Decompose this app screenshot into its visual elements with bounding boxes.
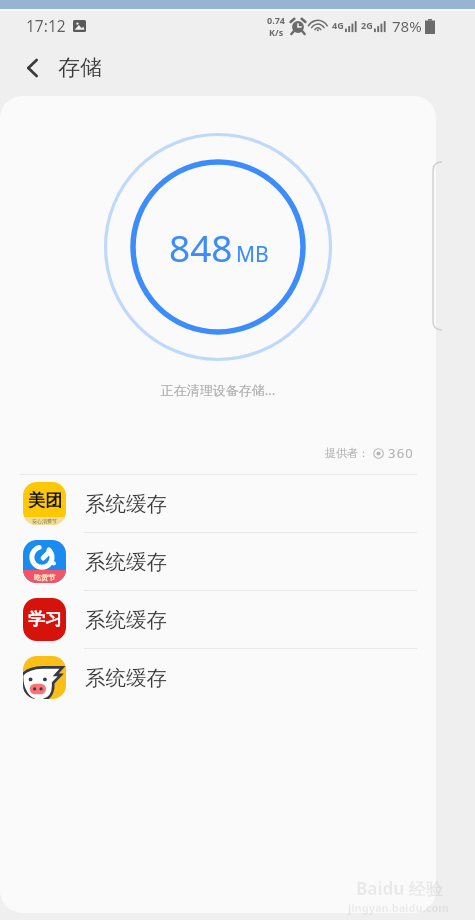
- staticText: 美团: [28, 490, 62, 511]
- button[interactable]: 吃货节: [0, 532, 436, 590]
- staticText: 360: [388, 444, 414, 462]
- staticText: 848: [169, 222, 233, 272]
- button[interactable]: 系统缓存: [0, 648, 436, 706]
- button[interactable]: 美团: [0, 474, 436, 532]
- staticText: 安心消费节: [32, 518, 57, 524]
- staticText: Baidu 经验: [356, 877, 443, 900]
- staticText: 4G: [332, 19, 344, 31]
- button[interactable]: Back: [0, 40, 52, 96]
- staticText: 正在清理设备存储...: [0, 381, 436, 399]
- staticText: 系统缓存: [85, 665, 167, 691]
- staticText: 系统缓存: [85, 549, 167, 575]
- staticText: jingyan.baidu.com: [348, 900, 450, 915]
- staticText: 存储: [58, 54, 102, 82]
- staticText: 2G: [361, 19, 373, 31]
- staticText: 系统缓存: [85, 491, 167, 517]
- staticText: 78%: [392, 16, 422, 36]
- button[interactable]: 学习: [0, 590, 436, 648]
- staticText: 0.74: [267, 14, 285, 26]
- staticText: MB: [236, 240, 269, 269]
- staticText: 学习: [28, 609, 62, 630]
- staticText: 17:12: [26, 15, 66, 36]
- staticText: K/s: [269, 26, 284, 38]
- staticText: 系统缓存: [85, 607, 167, 633]
- staticText: 提供者：: [325, 446, 369, 460]
- staticText: 吃货节: [34, 573, 55, 582]
